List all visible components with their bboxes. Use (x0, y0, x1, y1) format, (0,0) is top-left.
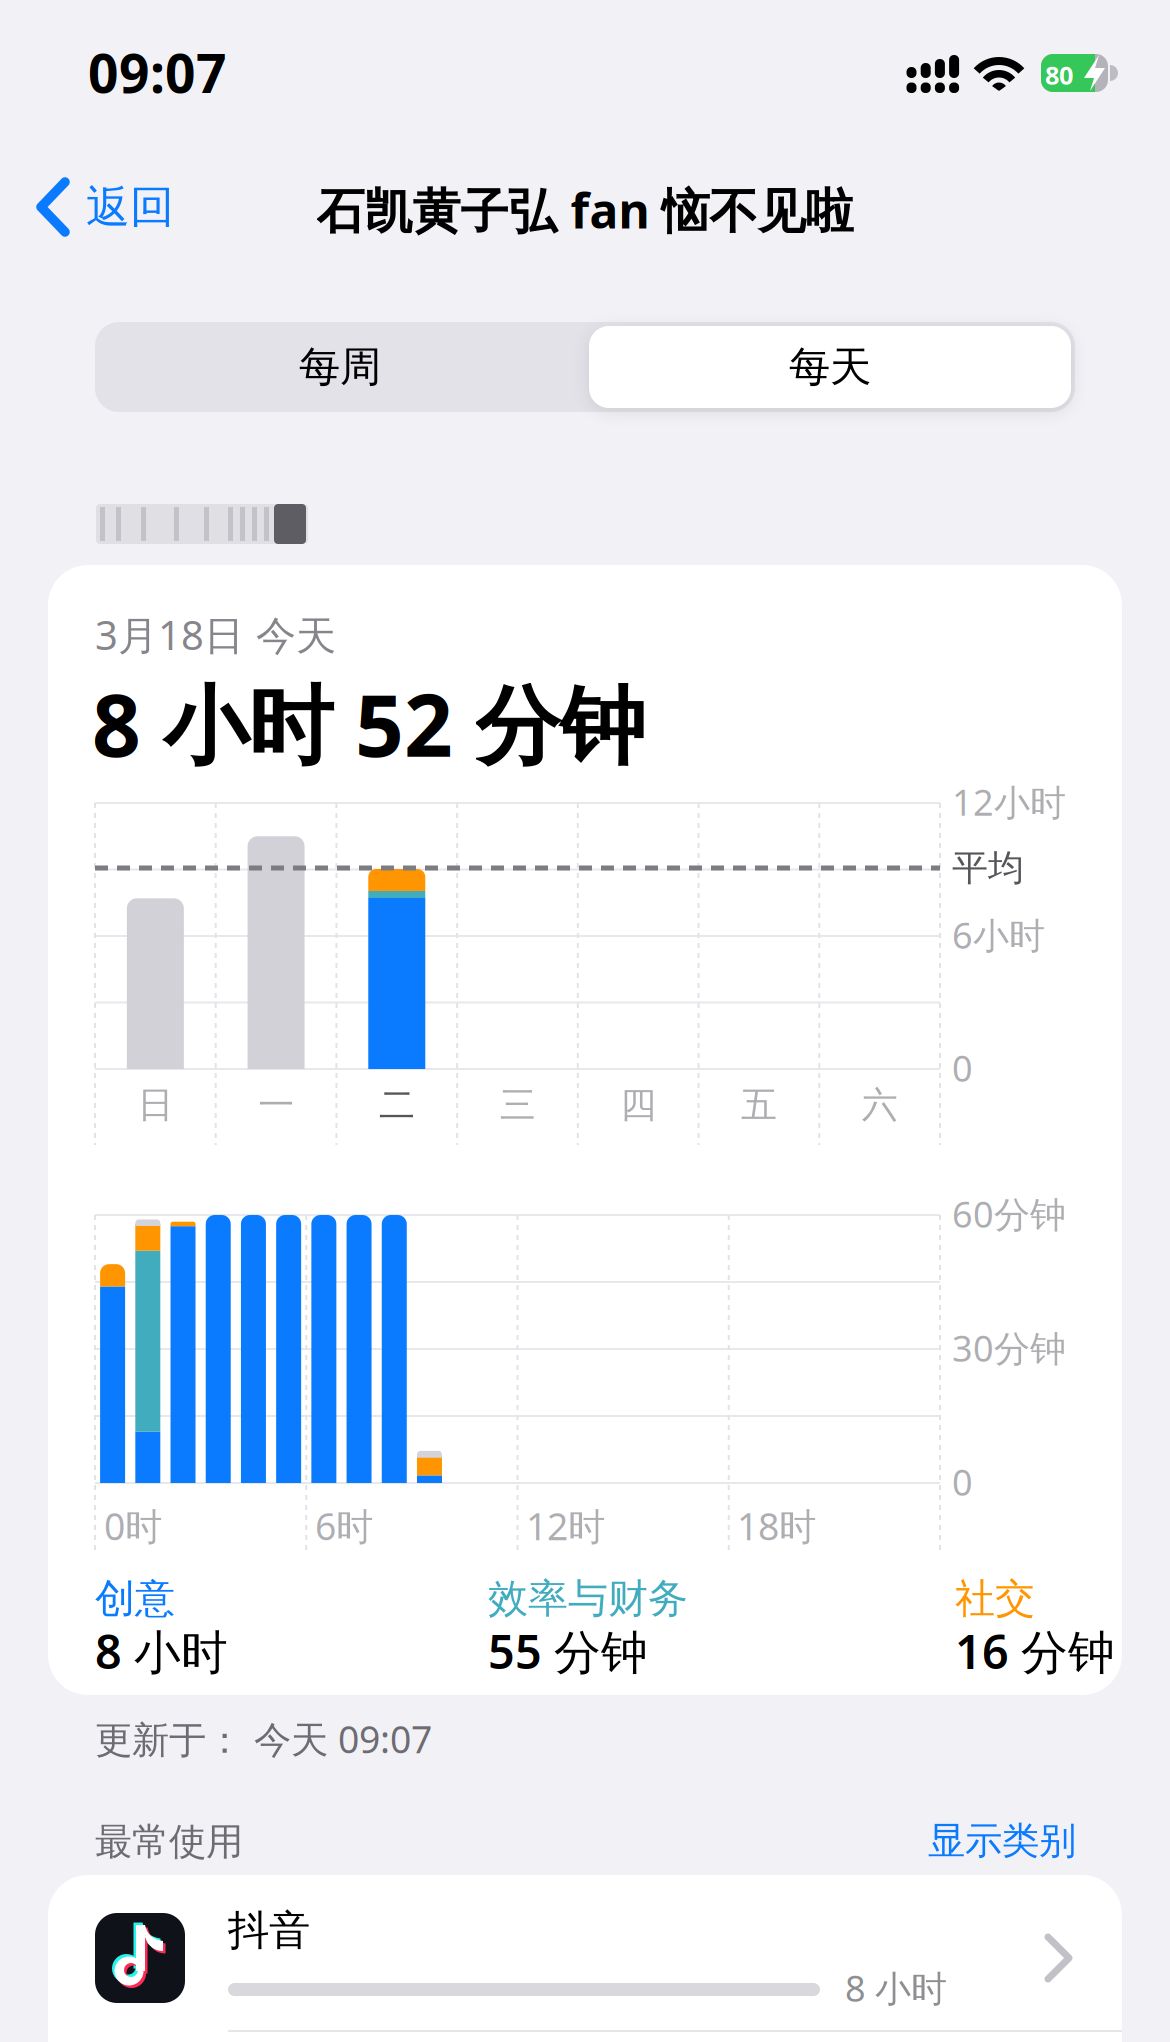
staticText: 社交 (955, 1574, 1035, 1623)
staticText: 抖音 (228, 1905, 310, 1956)
staticText: 平均 (952, 846, 1024, 890)
staticText: 每周 (299, 342, 381, 392)
staticText: 12小时 (952, 778, 1066, 826)
staticText: 显示类别 (928, 1818, 1076, 1864)
staticText: 60分钟 (952, 1190, 1066, 1238)
button[interactable]: 显示类别 (928, 1818, 1076, 1864)
staticText: 返回 (86, 180, 174, 234)
button[interactable]: 抖音 (48, 1875, 1170, 2042)
staticText: 最常使用 (95, 1819, 243, 1865)
button[interactable]: 每天 (589, 326, 1071, 408)
staticText: 12时 (526, 1501, 605, 1551)
staticText: 六 (862, 1083, 898, 1127)
staticText: 55 分钟 (488, 1620, 648, 1682)
staticText: 09:07 (88, 37, 227, 108)
staticText: 80 (1045, 58, 1073, 92)
staticText: 18时 (737, 1501, 816, 1551)
staticText: 30分钟 (952, 1324, 1066, 1372)
staticText: 3月18日 今天 (95, 608, 336, 661)
staticText: 石凯黄子弘 fan 恼不见啦 (316, 178, 853, 242)
staticText: 效率与财务 (488, 1574, 688, 1623)
staticText: 6小时 (952, 911, 1045, 959)
button[interactable]: 返回 (36, 179, 174, 235)
staticText: 0时 (104, 1501, 162, 1551)
staticText: 一 (258, 1083, 294, 1127)
staticText: 每天 (789, 342, 871, 392)
staticText: 8 小时 (845, 1964, 947, 2012)
staticText: 四 (620, 1083, 656, 1127)
staticText: 8 小时 52 分钟 (92, 667, 645, 780)
staticText: 日 (137, 1083, 173, 1127)
staticText: 二 (379, 1083, 415, 1127)
staticText: 更新于： 今天 09:07 (95, 1714, 432, 1764)
staticText: 三 (500, 1083, 536, 1127)
staticText: 0 (952, 1458, 973, 1506)
button[interactable]: 每周 (100, 322, 580, 412)
staticText: 创意 (95, 1574, 175, 1623)
staticText: 16 分钟 (955, 1620, 1115, 1682)
staticText: 8 小时 (95, 1620, 228, 1682)
staticText: 五 (741, 1083, 777, 1127)
staticText: 6时 (315, 1501, 373, 1551)
staticText: 0 (952, 1044, 973, 1092)
